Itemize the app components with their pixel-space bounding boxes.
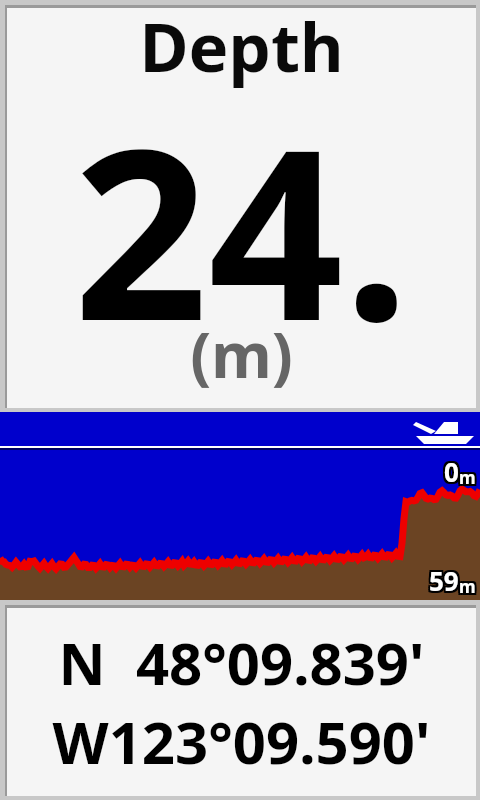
- staticText: m: [457, 573, 474, 596]
- staticText: N 48°09.839': [7, 623, 476, 702]
- button[interactable]: Depth: [0, 0, 480, 412]
- staticText: m: [457, 466, 474, 489]
- staticText: m: [461, 577, 478, 600]
- staticText: m: [459, 468, 476, 491]
- button[interactable]: Sonar depth chart: [0, 412, 480, 600]
- staticText: Depth: [7, 0, 476, 91]
- staticText: m: [457, 468, 474, 491]
- staticText: 0: [446, 454, 461, 489]
- staticText: W123°09.590': [7, 702, 476, 781]
- staticText: 59: [427, 565, 457, 600]
- button[interactable]: N 48°09.839': [0, 600, 480, 800]
- staticText: m: [461, 464, 478, 487]
- staticText: 0: [444, 454, 459, 489]
- staticText: m: [459, 575, 476, 598]
- staticText: 59: [429, 563, 459, 598]
- staticText: 24.4: [7, 68, 476, 468]
- staticText: 0: [444, 452, 459, 487]
- staticText: 0: [442, 454, 457, 489]
- staticText: (m): [7, 312, 476, 396]
- staticText: 0: [446, 456, 461, 491]
- staticText: m: [461, 573, 478, 596]
- staticText: 0: [442, 456, 457, 491]
- staticText: m: [459, 577, 476, 600]
- staticText: 59: [427, 561, 457, 596]
- staticText: m: [457, 464, 474, 487]
- staticText: m: [461, 466, 478, 489]
- staticText: 59: [429, 561, 459, 596]
- staticText: 59: [431, 565, 461, 600]
- staticText: m: [459, 464, 476, 487]
- staticText: m: [457, 577, 474, 600]
- staticText: 59: [427, 563, 457, 598]
- staticText: 0: [446, 452, 461, 487]
- staticText: m: [459, 573, 476, 596]
- staticText: 59: [431, 561, 461, 596]
- staticText: 59: [429, 565, 459, 600]
- staticText: m: [461, 575, 478, 598]
- staticText: m: [459, 466, 476, 489]
- staticText: 0: [444, 456, 459, 491]
- staticText: 59: [431, 563, 461, 598]
- staticText: 0: [442, 452, 457, 487]
- staticText: m: [457, 575, 474, 598]
- staticText: m: [461, 468, 478, 491]
